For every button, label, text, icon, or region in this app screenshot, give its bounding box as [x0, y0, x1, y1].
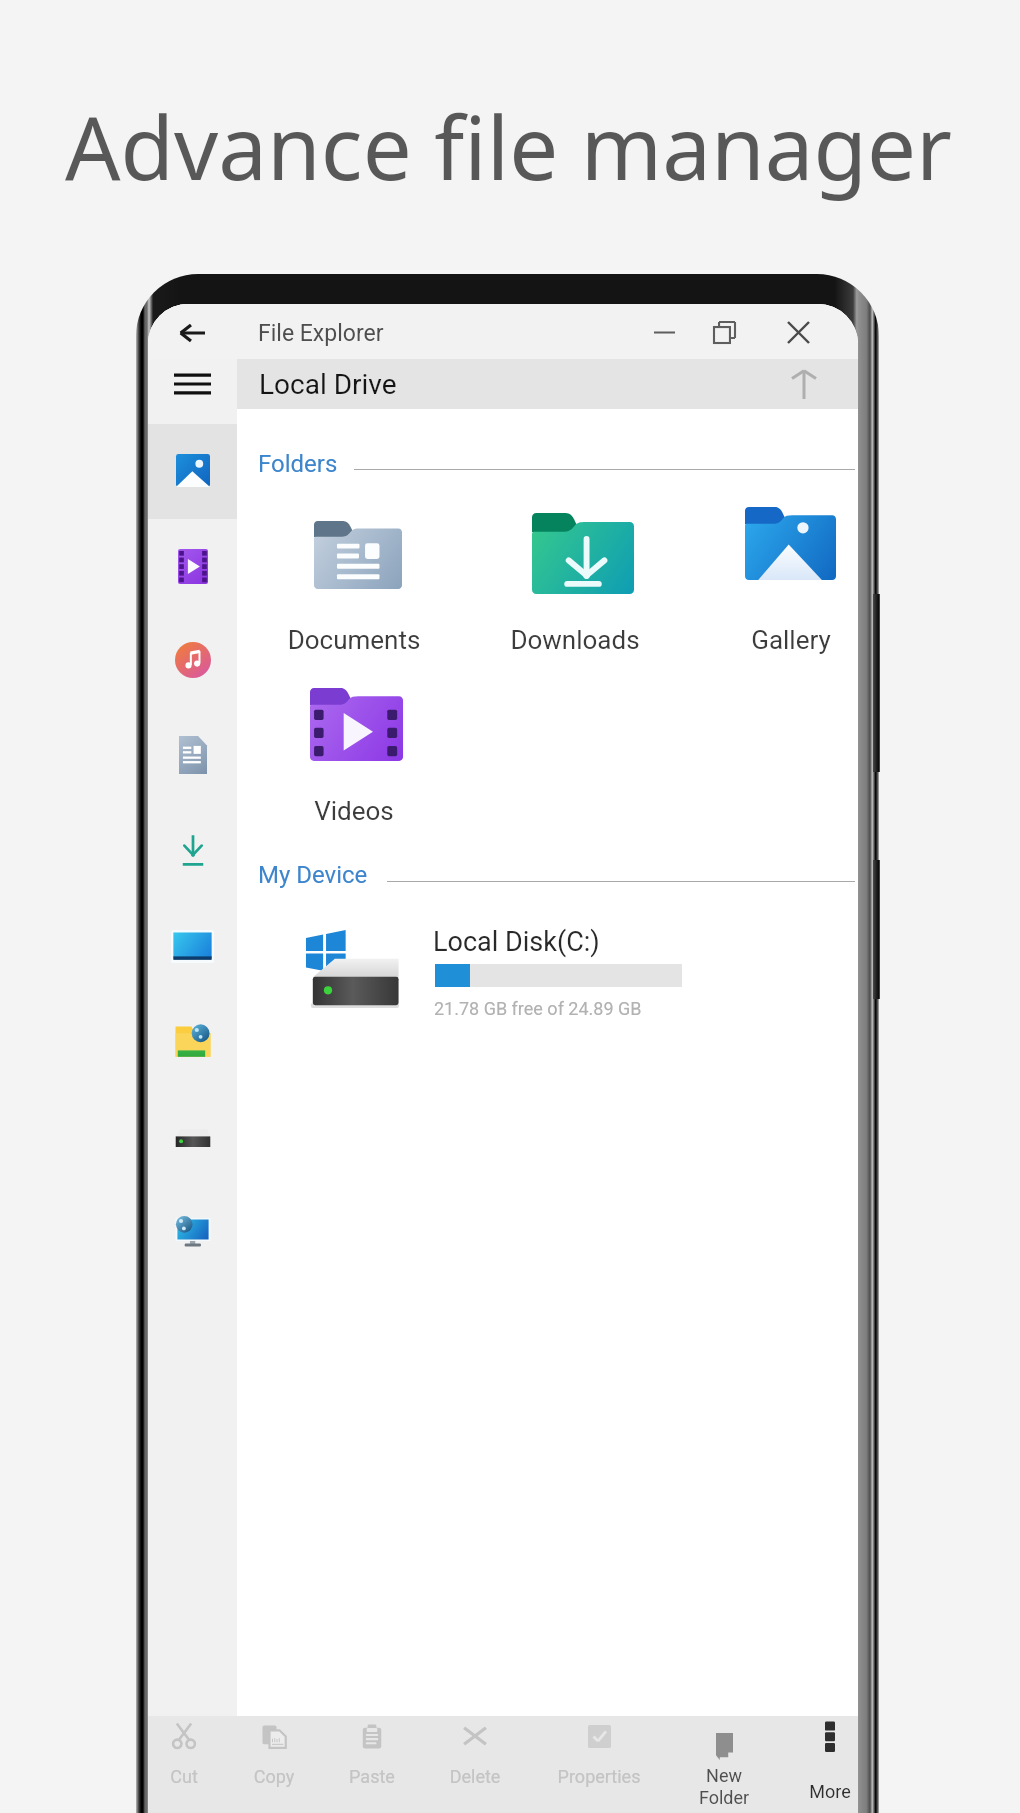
button[interactable]: Delete: [420, 1716, 530, 1813]
button[interactable]: Properties: [544, 1716, 654, 1813]
button[interactable]: Cut: [148, 1716, 239, 1813]
staticText: File Explorer: [258, 320, 384, 347]
staticText: 21.78 GB free of 24.89 GB: [434, 998, 642, 1019]
button[interactable]: Up one level: [785, 365, 823, 403]
button[interactable]: Music: [148, 614, 237, 706]
button[interactable]: Documents: [245, 499, 463, 647]
button[interactable]: Videos: [245, 666, 463, 814]
staticText: Cut: [148, 1766, 239, 1787]
button[interactable]: Local Disk(C:): [288, 912, 708, 1024]
button[interactable]: Close: [768, 315, 828, 349]
button[interactable]: Minimize: [634, 315, 694, 349]
other: Volume: [873, 594, 880, 772]
button[interactable]: Restore: [694, 315, 754, 349]
staticText: Copy: [219, 1766, 329, 1787]
button[interactable]: Downloads: [466, 491, 684, 639]
button[interactable]: Images: [148, 424, 237, 516]
staticText: Paste: [317, 1766, 427, 1787]
staticText: More: [775, 1781, 858, 1802]
staticText: Local Drive: [259, 368, 397, 401]
staticText: Folders: [258, 450, 338, 478]
staticText: New Folder: [669, 1765, 779, 1809]
button[interactable]: Paste: [317, 1716, 427, 1813]
button[interactable]: More: [775, 1716, 858, 1813]
button[interactable]: Copy: [219, 1716, 329, 1813]
button[interactable]: Videos: [148, 520, 237, 612]
staticText: Advance file manager: [65, 87, 953, 205]
button[interactable]: Network: [148, 1183, 237, 1275]
staticText: Properties: [544, 1766, 654, 1787]
button[interactable]: Gallery: [682, 485, 858, 633]
staticText: Videos: [245, 796, 463, 826]
staticText: My Device: [258, 861, 368, 889]
other: Power: [873, 860, 880, 999]
button[interactable]: Back: [160, 313, 224, 353]
button[interactable]: New Folder: [669, 1716, 779, 1813]
staticText: Delete: [420, 1766, 530, 1787]
staticText: Documents: [245, 625, 463, 655]
button[interactable]: Network folder: [148, 994, 237, 1086]
button[interactable]: Drive: [148, 1092, 237, 1184]
staticText: Local Disk(C:): [433, 926, 600, 958]
staticText: Downloads: [466, 625, 684, 655]
button[interactable]: Documents: [148, 709, 237, 801]
button[interactable]: Local Drive: [237, 359, 858, 409]
button[interactable]: Downloads: [148, 805, 237, 897]
button[interactable]: Menu: [160, 362, 224, 406]
staticText: Gallery: [682, 625, 858, 655]
button[interactable]: Desktop: [148, 900, 237, 992]
